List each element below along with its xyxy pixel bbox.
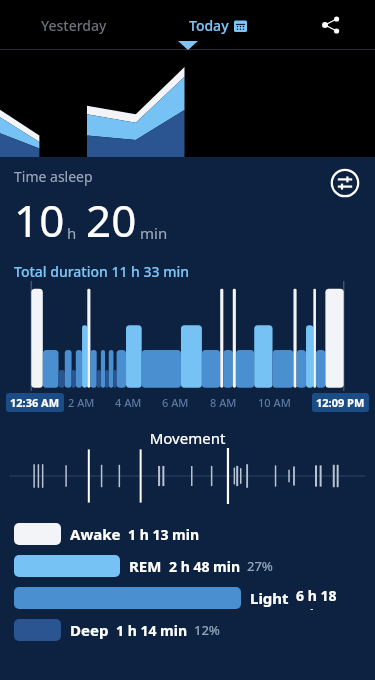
button[interactable]: Today: [134, 0, 301, 50]
staticText: 12%: [194, 621, 220, 639]
staticText: Time asleep: [14, 167, 93, 186]
staticText: Movement: [0, 428, 375, 448]
staticText: 12:09 PM: [316, 395, 365, 410]
staticText: 2 h 48 min: [169, 557, 240, 576]
button[interactable]: Adjust sleep times: [329, 167, 361, 199]
staticText: h: [67, 223, 77, 243]
button[interactable]: Deep: [14, 618, 361, 642]
staticText: 27%: [247, 557, 273, 575]
staticText: 8 AM: [210, 395, 237, 410]
button[interactable]: Awake: [14, 522, 361, 546]
staticText: Yesterday: [41, 16, 107, 35]
staticText: 1 h 13 min: [128, 525, 199, 544]
button[interactable]: Yesterday: [14, 0, 134, 50]
staticText: Light: [250, 588, 289, 608]
staticText: 6 AM: [162, 395, 189, 410]
staticText: Total duration 11 h 33 min: [14, 262, 189, 281]
button[interactable]: REM: [14, 554, 361, 578]
staticText: 10 AM: [258, 395, 291, 410]
button[interactable]: Share: [301, 0, 361, 50]
staticText: REM: [129, 556, 162, 576]
staticText: Deep: [70, 620, 109, 640]
staticText: Today: [189, 16, 229, 35]
staticText: 2 AM: [68, 395, 95, 410]
staticText: 4 AM: [115, 395, 142, 410]
staticText: min: [140, 223, 168, 243]
staticText: 1 h 14 min: [116, 621, 187, 640]
staticText: Awake: [70, 524, 121, 544]
staticText: 10: [14, 190, 65, 250]
staticText: 6 h 18 min: [296, 586, 361, 610]
button[interactable]: Light: [14, 586, 361, 610]
staticText: 20: [86, 190, 137, 250]
staticText: 12:36 AM: [10, 395, 60, 410]
